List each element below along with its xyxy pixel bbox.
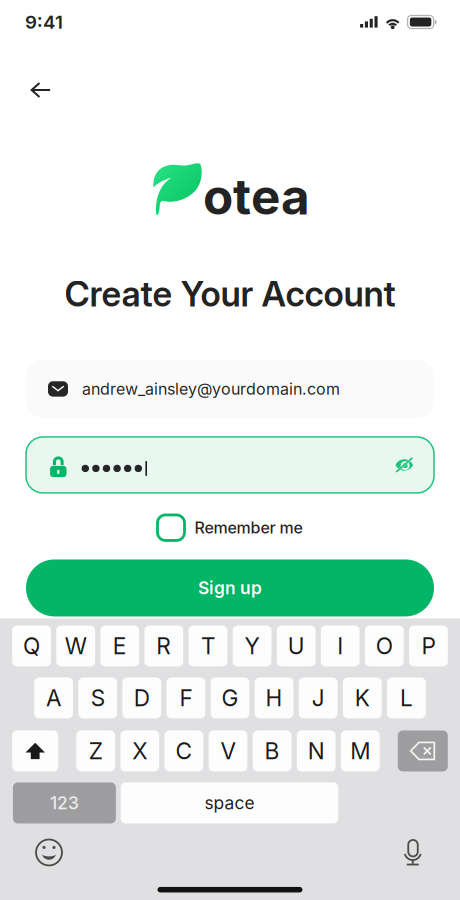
staticText: B [265, 737, 280, 765]
staticText: andrew_ainsley@yourdomain.com [82, 379, 340, 399]
button[interactable]: X [120, 730, 159, 771]
button[interactable]: S [78, 677, 117, 718]
button[interactable]: 123 [13, 782, 116, 823]
button[interactable]: Shift [12, 730, 58, 771]
staticText: F [179, 684, 192, 712]
staticText: Q [23, 632, 40, 660]
staticText: X [132, 737, 147, 765]
button[interactable]: F [166, 677, 205, 718]
button[interactable]: Q [12, 625, 51, 666]
staticText: E [113, 632, 127, 660]
button[interactable]: space [121, 782, 338, 823]
staticText: I [337, 632, 343, 660]
staticText: P [421, 632, 435, 660]
button[interactable]: C [164, 730, 203, 771]
staticText: 123 [50, 792, 79, 813]
button[interactable]: B [253, 730, 291, 771]
staticText: O [376, 632, 393, 660]
staticText: G [221, 684, 238, 712]
button[interactable]: Z [76, 730, 115, 771]
staticText: Remember me [194, 518, 302, 537]
button[interactable]: Show password [395, 457, 414, 473]
button[interactable]: E [100, 625, 139, 666]
staticText: otea [203, 167, 310, 226]
staticText: 9:41 [25, 11, 63, 33]
staticText: J [312, 684, 325, 712]
staticText: W [65, 632, 87, 660]
staticText: L [400, 684, 413, 712]
button[interactable]: U [277, 625, 315, 666]
staticText: K [355, 684, 370, 712]
staticText: A [46, 684, 61, 712]
button[interactable]: Sign up [26, 559, 434, 616]
button[interactable]: W [56, 625, 95, 666]
staticText: C [175, 737, 192, 765]
button[interactable]: Delete [398, 730, 448, 771]
button[interactable]: Dictation [390, 837, 436, 867]
staticText: D [134, 684, 150, 712]
staticText: Z [89, 737, 103, 765]
staticText: N [308, 737, 325, 765]
staticText: S [91, 684, 105, 712]
button[interactable]: G [211, 677, 249, 718]
staticText: V [220, 737, 235, 765]
button[interactable]: P [409, 625, 448, 666]
staticText: R [156, 632, 171, 660]
button[interactable]: Remember me [157, 514, 302, 540]
button[interactable]: Emoji keyboard [26, 837, 72, 867]
button[interactable]: V [209, 730, 247, 771]
button[interactable]: L [387, 677, 426, 718]
button[interactable]: K [343, 677, 382, 718]
button[interactable]: J [299, 677, 338, 718]
staticText: H [266, 684, 283, 712]
staticText: M [350, 737, 370, 765]
staticText: Create Your Account [64, 273, 395, 315]
staticText: Sign up [198, 577, 262, 598]
button[interactable]: T [188, 625, 227, 666]
staticText: space [204, 792, 254, 813]
button[interactable]: A [34, 677, 73, 718]
staticText: U [288, 632, 305, 660]
button[interactable]: M [341, 730, 380, 771]
button[interactable]: O [365, 625, 404, 666]
button[interactable]: N [297, 730, 336, 771]
button[interactable]: D [122, 677, 161, 718]
button[interactable]: Y [233, 625, 271, 666]
button[interactable]: R [144, 625, 183, 666]
button[interactable]: Back [19, 68, 63, 112]
button[interactable]: H [255, 677, 293, 718]
staticText: T [201, 632, 215, 660]
staticText: Y [244, 632, 259, 660]
button[interactable]: I [321, 625, 360, 666]
